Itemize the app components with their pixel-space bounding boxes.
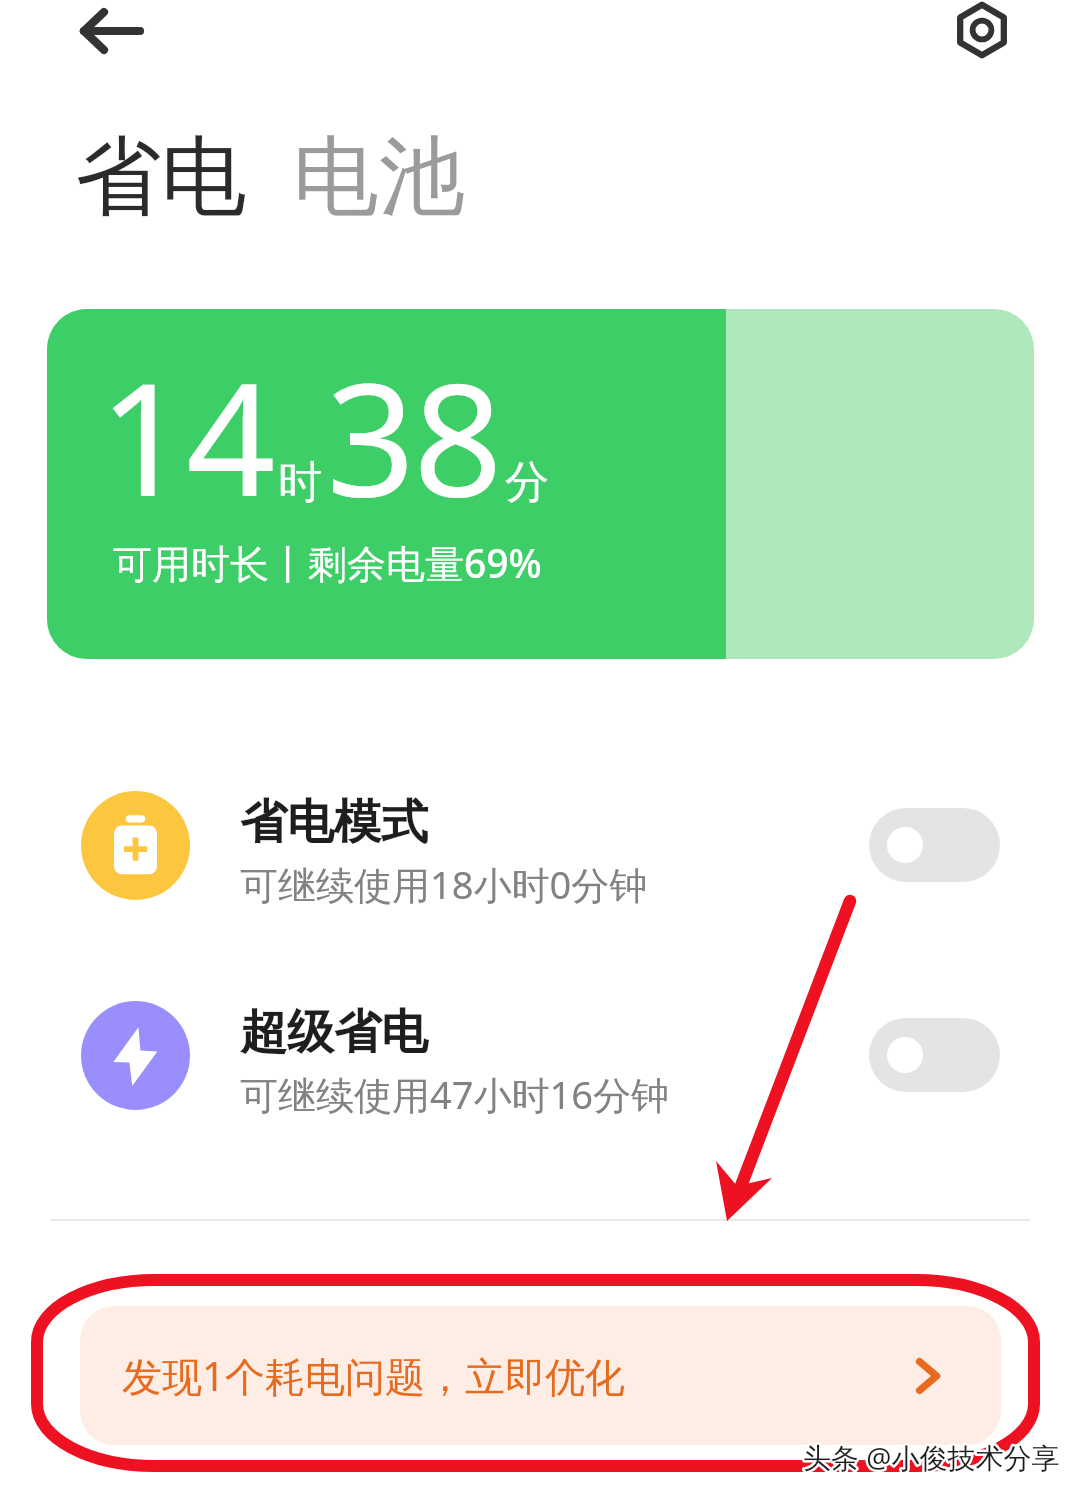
staticText: 时 [278, 455, 322, 510]
staticText: 超级省电 [240, 1003, 428, 1062]
staticText: 可继续使用18小时0分钟 [240, 858, 648, 910]
button[interactable]: Toggle 超级省电 [869, 1018, 1000, 1092]
button[interactable]: Toggle 省电模式 [869, 808, 1000, 882]
button[interactable]: Settings [922, 0, 1042, 90]
button[interactable]: 超级省电 [0, 988, 1080, 1122]
staticText: 头条 @小俊技术分享 [803, 1438, 1060, 1476]
staticText: 发现1个耗电问题，立即优化 [122, 1348, 625, 1403]
button[interactable]: 发现1个耗电问题，立即优化 [80, 1306, 1001, 1445]
button[interactable]: 省电 [75, 123, 247, 231]
staticText: 38 [326, 329, 501, 541]
button[interactable]: 电池 [293, 123, 465, 231]
staticText: 可继续使用47小时16分钟 [240, 1068, 669, 1120]
staticText: 电池 [293, 123, 465, 231]
staticText: 分 [505, 455, 549, 510]
staticText: 省电 [75, 123, 247, 231]
button[interactable]: 省电模式 [0, 778, 1080, 912]
button[interactable]: 14 [47, 309, 1034, 659]
staticText: 头条 @小俊技术分享 [803, 1438, 1060, 1476]
button[interactable]: Back [48, 0, 168, 91]
staticText: 14 [99, 329, 274, 541]
staticText: 省电模式 [240, 793, 428, 852]
staticText: 可用时长丨剩余电量69% [113, 536, 542, 589]
